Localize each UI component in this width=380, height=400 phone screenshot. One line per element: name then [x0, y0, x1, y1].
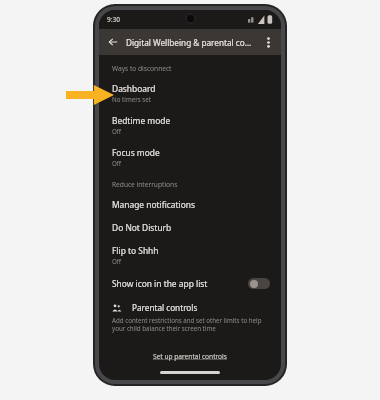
button[interactable]: Back — [103, 32, 123, 52]
staticText: No timers set — [112, 95, 151, 103]
staticText: Dashboard — [112, 83, 156, 94]
staticText: 9:30 — [107, 15, 120, 24]
staticText: Parental controls — [132, 302, 198, 313]
staticText: Digital Wellbeing & parental co… — [126, 37, 259, 48]
staticText: Off — [112, 159, 122, 167]
staticText: Do Not Disturb — [112, 222, 172, 233]
button[interactable]: Do Not Disturb — [99, 216, 281, 239]
button[interactable]: More options — [259, 33, 277, 51]
button[interactable]: Show icon in the app list — [99, 271, 281, 296]
button[interactable]: Set up parental controls — [147, 349, 233, 364]
button[interactable]: Dashboard — [99, 77, 281, 109]
staticText: Bedtime mode — [112, 115, 171, 126]
staticText: Show icon in the app list — [112, 278, 248, 289]
staticText: Manage notifications — [112, 199, 196, 210]
button[interactable]: Manage notifications — [99, 193, 281, 216]
staticText: Flip to Shhh — [112, 245, 159, 256]
staticText: Add content restrictions and set other l… — [112, 316, 269, 332]
button[interactable]: Focus mode — [99, 141, 281, 173]
staticText: Off — [112, 257, 122, 265]
staticText: Reduce interruptions — [112, 180, 281, 189]
button[interactable]: Bedtime mode — [99, 109, 281, 141]
staticText: Ways to disconnect — [112, 64, 281, 73]
staticText: Off — [112, 127, 122, 135]
staticText: Set up parental controls — [153, 352, 227, 361]
button[interactable]: Parental controls — [99, 296, 281, 336]
staticText: Focus mode — [112, 147, 160, 158]
button[interactable]: Flip to Shhh — [99, 239, 281, 271]
